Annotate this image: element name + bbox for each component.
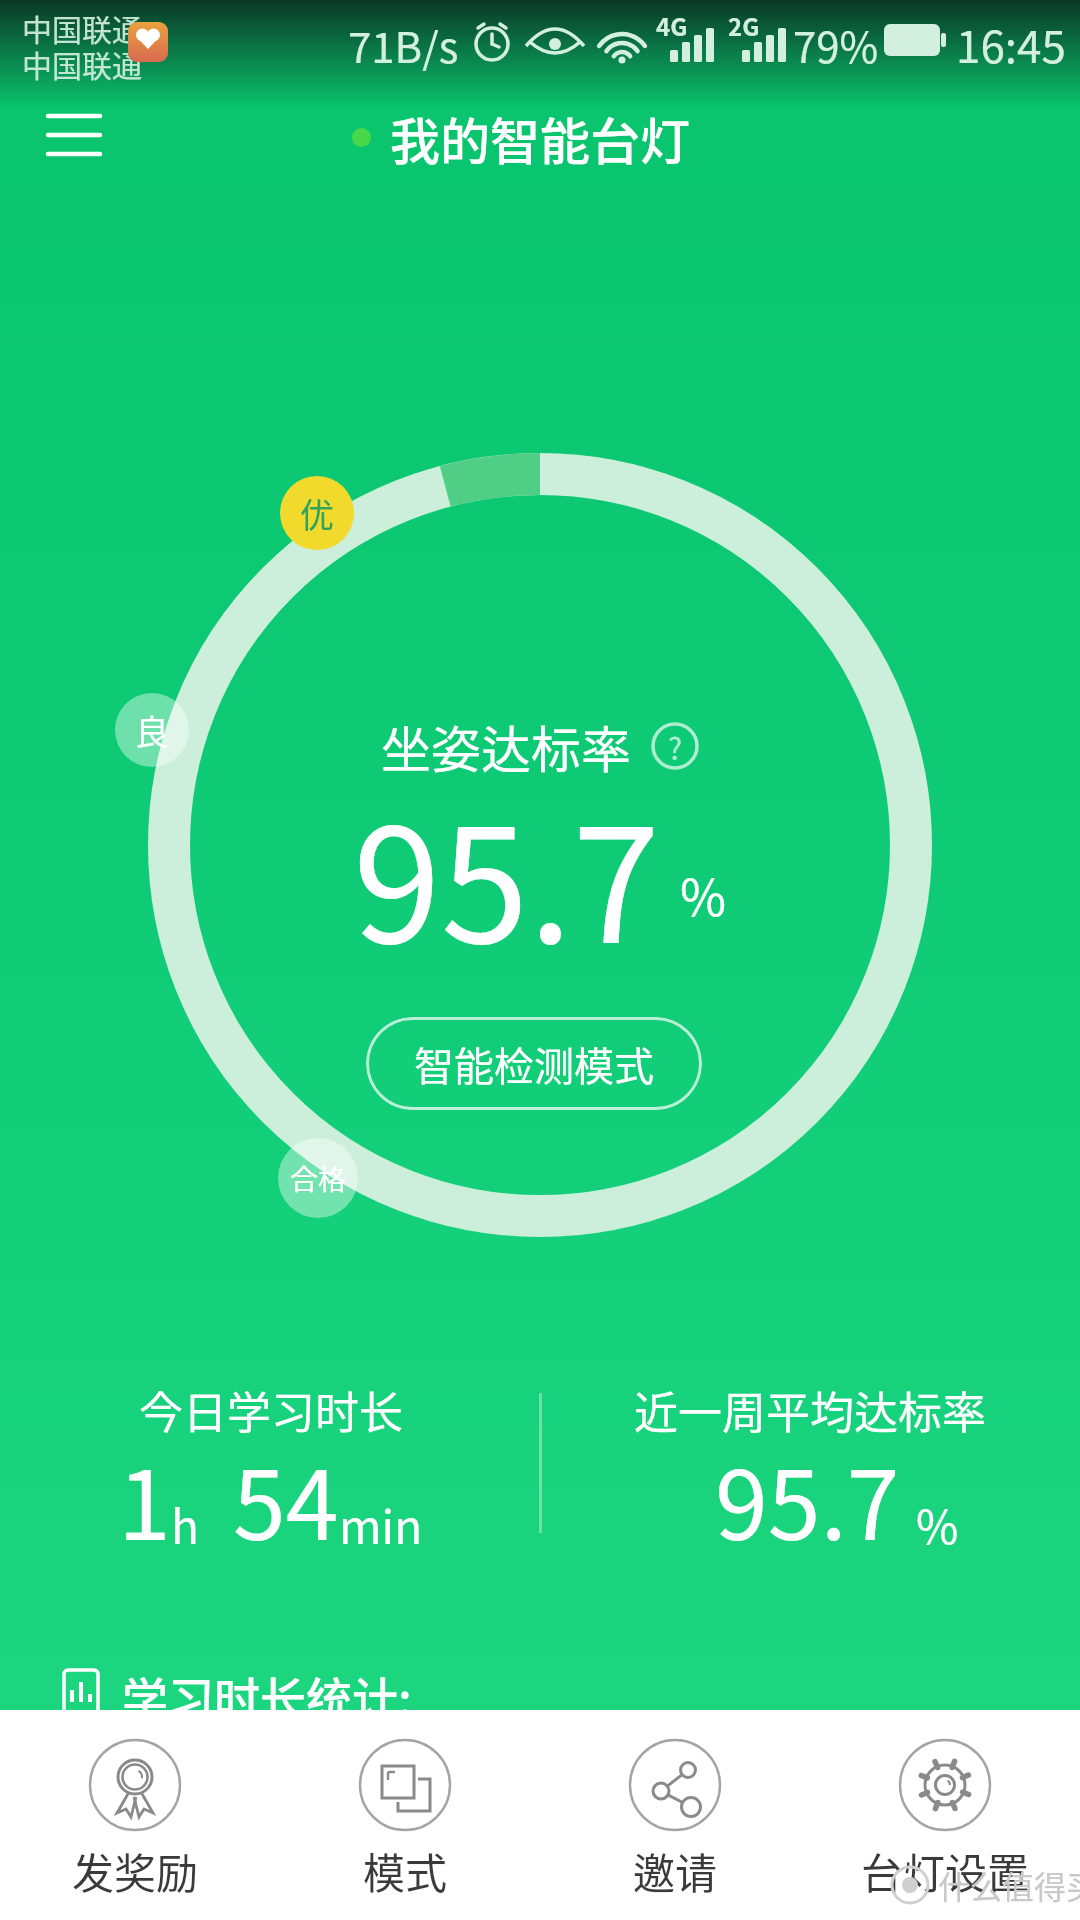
- button[interactable]: 模式: [270, 1710, 540, 1920]
- button[interactable]: 台灯设置: [810, 1710, 1080, 1920]
- staticText: %: [680, 858, 727, 930]
- staticText: 坐姿达标率: [381, 710, 631, 782]
- staticText: 我的智能台灯: [390, 102, 690, 172]
- staticText: 学习时长统计:: [122, 1663, 412, 1730]
- staticText: 16:45: [956, 12, 1066, 76]
- staticText: 79%: [793, 14, 879, 75]
- staticText: 中国联通: [22, 42, 142, 85]
- staticText: 智能检测模式: [414, 1035, 654, 1093]
- staticText: h: [171, 1491, 199, 1558]
- button[interactable]: 邀请: [540, 1710, 810, 1920]
- button[interactable]: ?: [651, 722, 699, 770]
- staticText: 95.7: [353, 760, 660, 960]
- staticText: 71B/s: [348, 14, 459, 75]
- staticText: 邀请: [633, 1840, 718, 1901]
- staticText: 优: [300, 489, 334, 538]
- staticText: 2G: [728, 8, 760, 43]
- staticText: 中国联通: [22, 6, 142, 49]
- staticText: 54: [233, 1430, 339, 1568]
- staticText: 1: [118, 1430, 171, 1568]
- staticText: 今日学习时长: [139, 1378, 403, 1442]
- button[interactable]: [34, 100, 114, 172]
- staticText: min: [339, 1491, 423, 1558]
- staticText: 良: [135, 706, 169, 755]
- staticText: 4G: [656, 8, 688, 43]
- staticText: 95.7: [715, 1430, 900, 1568]
- staticText: 发奖励: [72, 1840, 199, 1901]
- staticText: 什么值得买: [938, 1862, 1080, 1908]
- staticText: 近一周平均达标率: [634, 1378, 986, 1442]
- staticText: 模式: [363, 1840, 448, 1901]
- button[interactable]: 发奖励: [0, 1710, 270, 1920]
- staticText: 台灯设置: [861, 1840, 1030, 1901]
- staticText: %: [916, 1491, 959, 1558]
- staticText: ?: [668, 725, 683, 768]
- staticText: 合格: [290, 1158, 347, 1199]
- button[interactable]: 智能检测模式: [366, 1017, 702, 1110]
